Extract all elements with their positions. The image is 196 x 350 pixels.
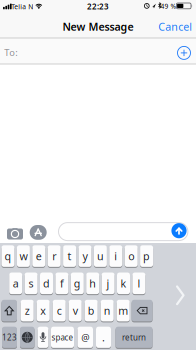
staticText: return bbox=[122, 332, 146, 343]
button[interactable]: q bbox=[1, 245, 14, 268]
button[interactable]: return bbox=[115, 327, 152, 349]
button[interactable]: Cancel bbox=[158, 19, 192, 34]
button[interactable]: Add Contact bbox=[177, 46, 191, 60]
button[interactable]: m bbox=[117, 300, 130, 322]
button[interactable]: e bbox=[32, 245, 45, 268]
button[interactable]: y bbox=[78, 245, 91, 268]
button[interactable]: i bbox=[109, 245, 122, 268]
button[interactable]: b bbox=[85, 300, 98, 322]
button[interactable]: 123 bbox=[2, 327, 17, 349]
button[interactable]: Shift bbox=[1, 300, 17, 322]
staticText: n bbox=[104, 303, 111, 318]
button[interactable]: Next keyboard bbox=[20, 327, 34, 349]
button[interactable]: Send bbox=[171, 223, 187, 239]
button[interactable]: p bbox=[140, 245, 153, 268]
button[interactable]: d bbox=[40, 273, 53, 295]
button[interactable]: u bbox=[94, 245, 107, 268]
staticText: g bbox=[74, 276, 81, 290]
button[interactable]: h bbox=[86, 273, 99, 295]
button[interactable]: z bbox=[21, 300, 34, 322]
staticText: v bbox=[73, 303, 78, 318]
staticText: Cancel bbox=[158, 19, 192, 34]
button[interactable]: o bbox=[125, 245, 138, 268]
staticText: Telia N bbox=[11, 2, 33, 11]
staticText: 22:23 bbox=[87, 1, 109, 12]
staticText: k bbox=[120, 276, 126, 290]
button[interactable]: a bbox=[9, 273, 22, 295]
staticText: d bbox=[43, 276, 50, 290]
staticText: b bbox=[88, 303, 95, 318]
button[interactable]: v bbox=[69, 300, 82, 322]
staticText: New Message bbox=[62, 19, 133, 34]
button[interactable]: t bbox=[63, 245, 76, 268]
staticText: x bbox=[40, 303, 46, 318]
button[interactable]: Dictate bbox=[38, 327, 48, 349]
staticText: f bbox=[60, 276, 64, 290]
staticText: r bbox=[52, 249, 56, 263]
button[interactable]: c bbox=[53, 300, 66, 322]
button[interactable]: space bbox=[51, 327, 74, 349]
staticText: l bbox=[137, 276, 140, 290]
staticText: i bbox=[114, 249, 117, 263]
staticText: . bbox=[102, 330, 105, 344]
button[interactable]: Expand keyboard bbox=[175, 285, 185, 305]
button[interactable]: k bbox=[117, 273, 130, 295]
staticText: a bbox=[13, 276, 19, 290]
button[interactable]: j bbox=[102, 273, 115, 295]
button[interactable]: n bbox=[101, 300, 114, 322]
staticText: w bbox=[19, 249, 27, 263]
staticText: To: bbox=[4, 46, 18, 58]
button[interactable]: Apps bbox=[30, 224, 46, 241]
button[interactable]: Delete bbox=[132, 300, 153, 322]
staticText: c bbox=[57, 303, 62, 318]
staticText: o bbox=[128, 249, 134, 263]
button[interactable]: r bbox=[48, 245, 61, 268]
button[interactable]: . bbox=[96, 327, 111, 349]
staticText: m bbox=[118, 303, 128, 318]
staticText: z bbox=[25, 303, 30, 318]
staticText: e bbox=[36, 249, 42, 263]
staticText: s bbox=[29, 276, 34, 290]
staticText: 123 bbox=[2, 332, 17, 343]
staticText: @ bbox=[81, 331, 89, 343]
button[interactable]: @ bbox=[77, 327, 93, 349]
staticText: j bbox=[107, 276, 110, 290]
staticText: y bbox=[82, 249, 87, 263]
staticText: p bbox=[143, 249, 150, 263]
button[interactable]: Camera bbox=[7, 226, 23, 239]
button[interactable]: x bbox=[37, 300, 50, 322]
staticText: q bbox=[4, 249, 11, 263]
staticText: 49 % bbox=[161, 2, 177, 11]
staticText: u bbox=[97, 249, 104, 263]
button[interactable]: g bbox=[71, 273, 84, 295]
staticText: t bbox=[68, 249, 72, 263]
button[interactable]: s bbox=[25, 273, 38, 295]
button[interactable]: l bbox=[132, 273, 145, 295]
staticText: h bbox=[89, 276, 96, 290]
button[interactable]: w bbox=[17, 245, 30, 268]
button[interactable]: f bbox=[55, 273, 68, 295]
staticText: space bbox=[51, 332, 73, 343]
